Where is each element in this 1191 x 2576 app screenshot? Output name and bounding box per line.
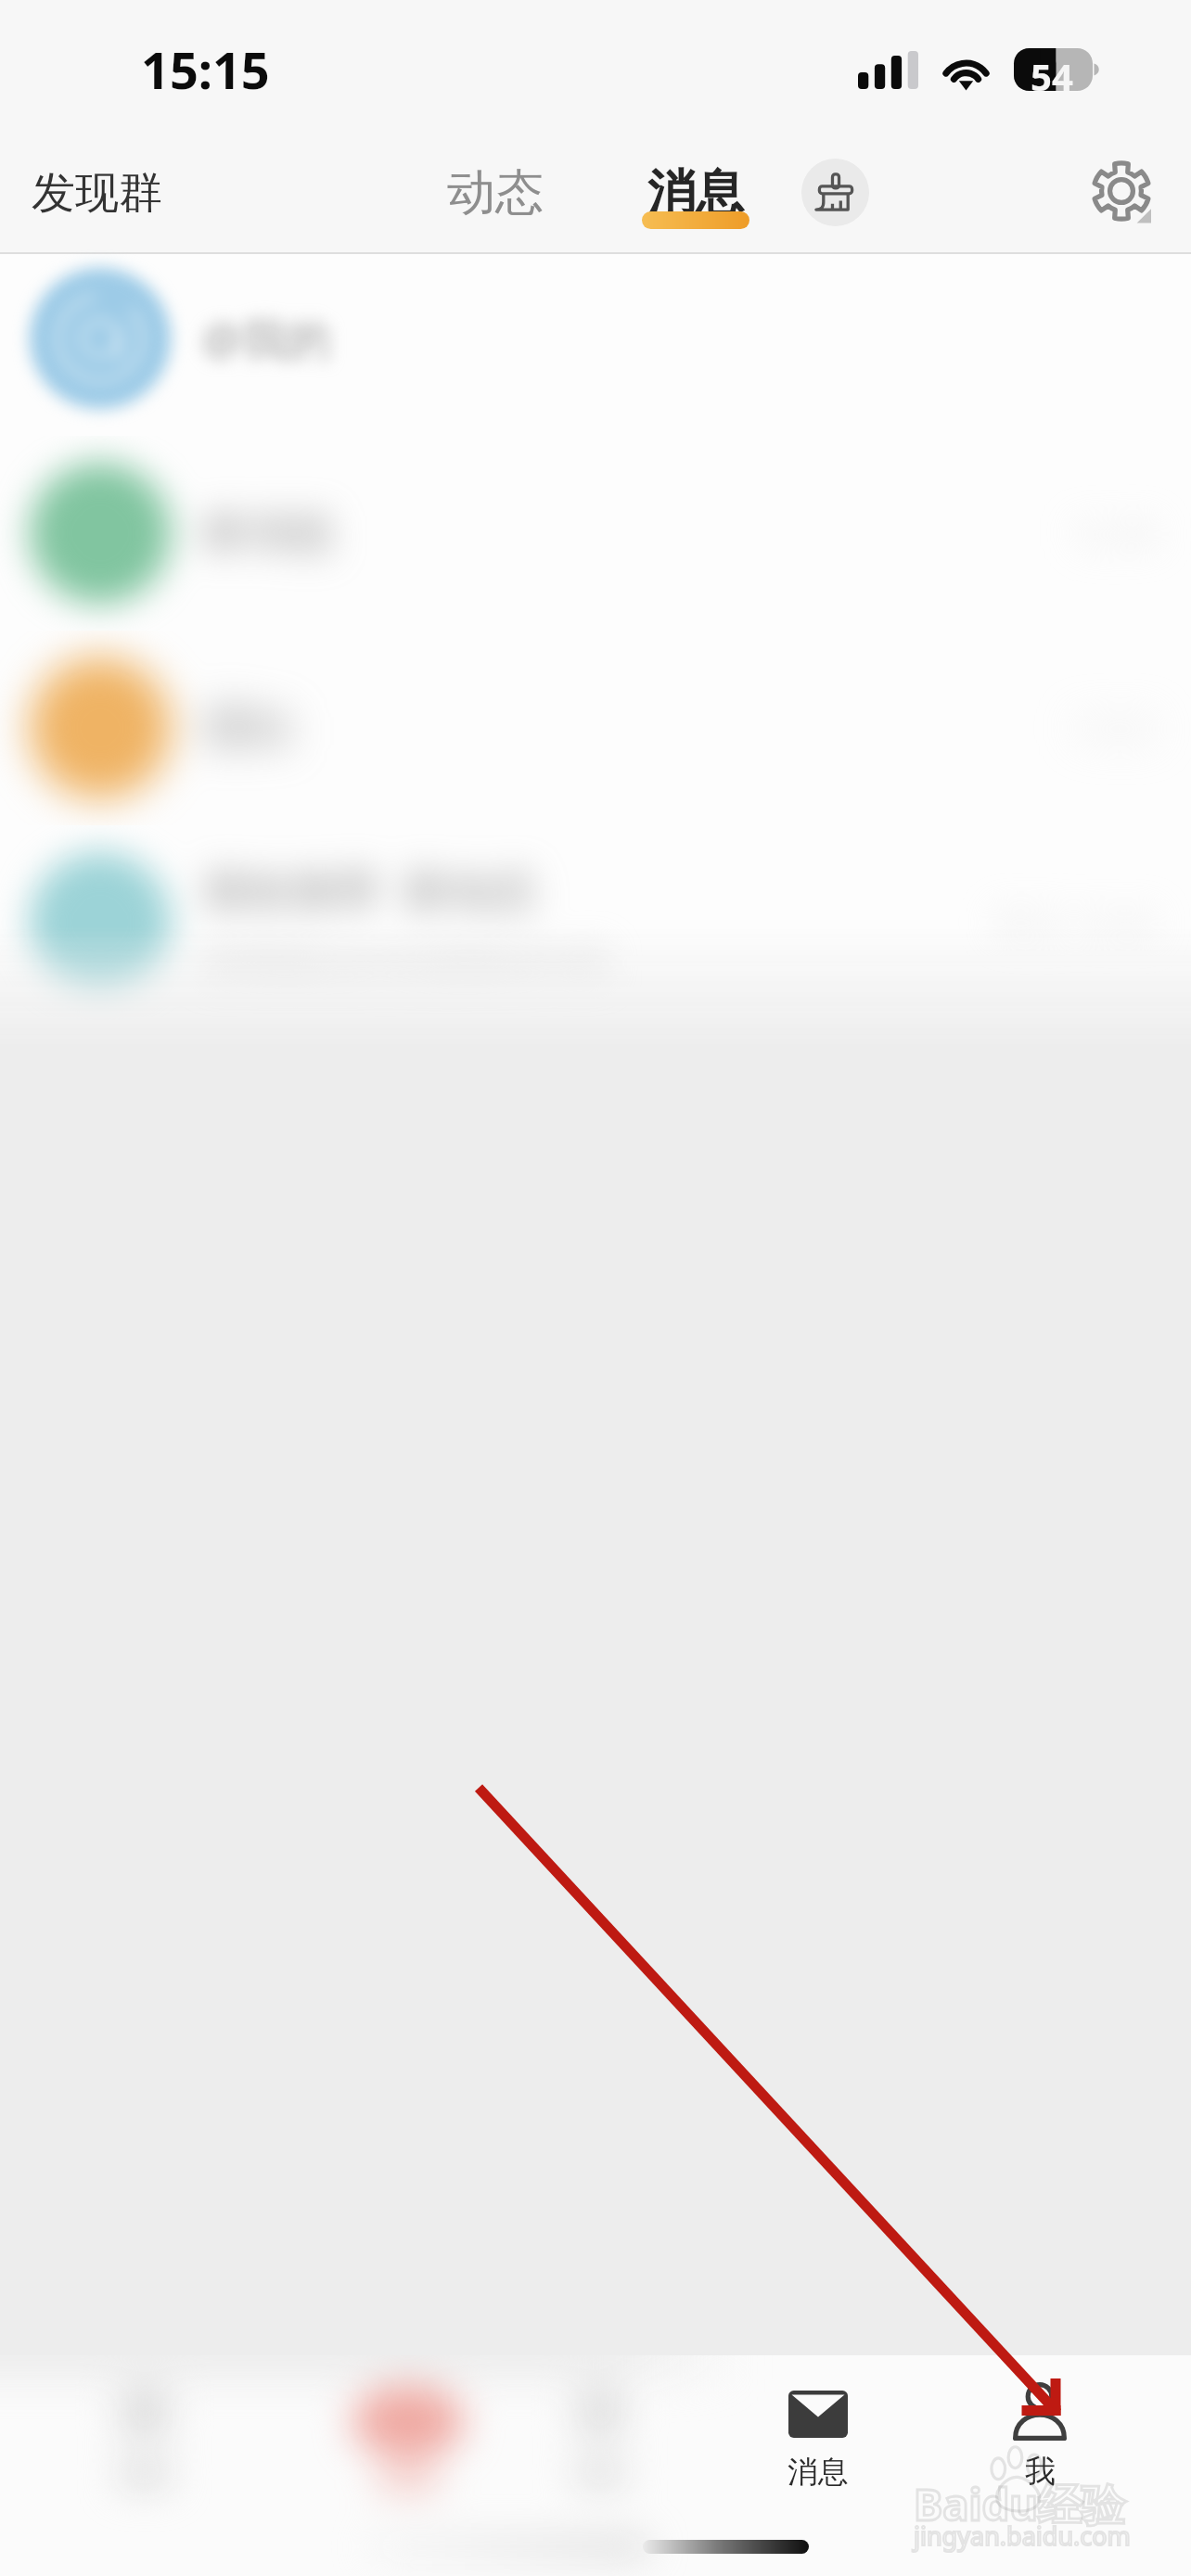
staticText: 发现群 xyxy=(32,166,162,221)
button[interactable]: 朋友推荐 新动态 xyxy=(0,825,1191,1020)
staticText: 动态 xyxy=(447,162,544,223)
button[interactable]: @我的 xyxy=(0,241,1191,436)
button[interactable]: 消息 xyxy=(735,2391,902,2492)
button[interactable]: Settings xyxy=(1084,154,1159,228)
staticText: 通知 xyxy=(202,700,291,756)
staticText: 消息 xyxy=(647,162,744,223)
button[interactable]: Clear unread xyxy=(801,159,869,226)
staticText: @我的 xyxy=(202,308,332,369)
staticText: jingyan.baidu.com xyxy=(914,2519,1131,2553)
staticText: 我 xyxy=(1025,2452,1056,2491)
staticText: Baidu经验 xyxy=(914,2474,1125,2533)
staticText: 15:15 xyxy=(141,35,270,104)
staticText: Baidu经验 xyxy=(914,2474,1125,2533)
button[interactable]: 群消息 xyxy=(0,436,1191,631)
button[interactable]: 通知 xyxy=(0,631,1191,825)
staticText: 朋友推荐 新动态 xyxy=(202,859,537,920)
button[interactable]: 消息 xyxy=(642,162,749,241)
button[interactable]: 我 xyxy=(956,2381,1123,2491)
staticText: 54 xyxy=(1031,51,1073,94)
staticText: 消息 xyxy=(788,2453,849,2492)
button[interactable]: 动态 xyxy=(429,146,562,240)
button[interactable]: 发现群 xyxy=(13,149,181,237)
staticText: 群消息 xyxy=(202,505,336,561)
